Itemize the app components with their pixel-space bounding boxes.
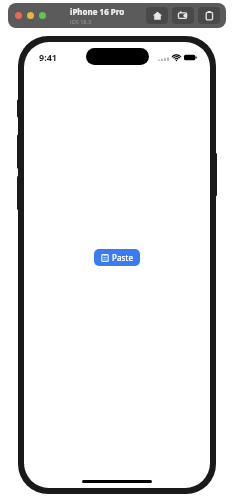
button[interactable]: Minimize (27, 12, 34, 19)
button[interactable]: Maximize (39, 12, 46, 19)
button[interactable]: Close (15, 12, 22, 19)
staticText: 9:41 (39, 51, 57, 63)
staticText: iOS 18.3 (70, 18, 92, 25)
staticText: iPhone 16 Pro (70, 6, 125, 17)
button[interactable]: Paste (94, 249, 140, 266)
staticText: Paste (112, 252, 133, 263)
button[interactable]: Screenshot (172, 7, 194, 24)
button[interactable]: Home (146, 7, 168, 24)
button[interactable]: Rotate (198, 7, 220, 24)
